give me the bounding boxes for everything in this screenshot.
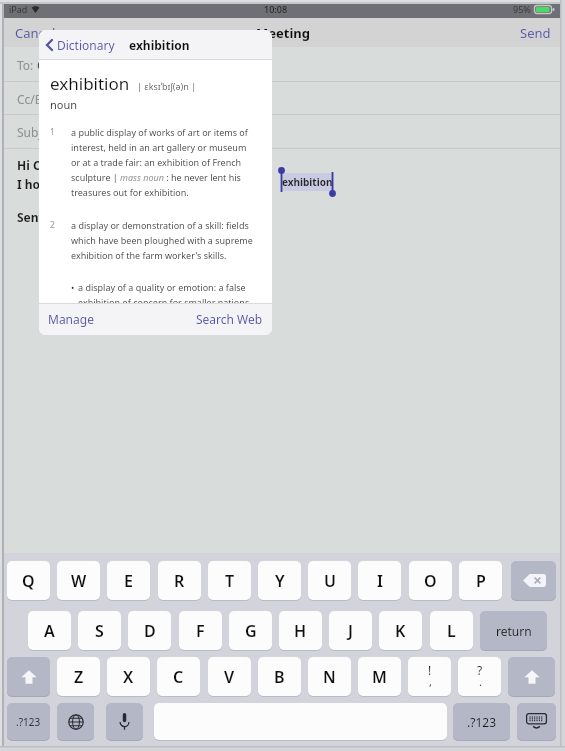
staticText: A	[44, 620, 55, 642]
button[interactable]: .?123	[453, 703, 510, 740]
staticText: Subject:	[17, 124, 65, 140]
staticText: ?	[477, 662, 483, 678]
staticText: Meeting	[65, 124, 112, 140]
button[interactable]: Switch keyboard	[57, 703, 94, 740]
staticText: Search Web	[196, 311, 263, 327]
staticText: Hi Chris,	[17, 157, 67, 173]
staticText: Send	[520, 24, 551, 42]
button[interactable]: ?	[458, 657, 501, 696]
button[interactable]: Shift	[508, 657, 555, 696]
button[interactable]: Cancel	[0, 20, 62, 46]
staticText: Meeting	[256, 24, 310, 42]
staticText: return	[496, 623, 532, 639]
button[interactable]: E	[107, 561, 150, 600]
button[interactable]: Dictation	[106, 703, 143, 740]
button[interactable]: N	[308, 657, 351, 696]
button[interactable]: H	[279, 611, 322, 650]
staticText: K	[395, 620, 406, 642]
staticText: Z	[74, 666, 84, 688]
button[interactable]: .?123	[7, 703, 50, 740]
button[interactable]: B	[258, 657, 301, 696]
button[interactable]: F	[179, 611, 222, 650]
button[interactable]: C	[157, 657, 200, 696]
button[interactable]: W	[57, 561, 100, 600]
staticText: B	[274, 666, 285, 688]
button[interactable]: Shift	[7, 657, 50, 696]
staticText: me@icloud.com	[97, 91, 188, 107]
staticText: Q	[22, 570, 35, 592]
staticText: a public display of works of art or item…	[71, 126, 256, 198]
staticText: U	[324, 570, 336, 592]
button[interactable]: Y	[258, 561, 301, 600]
staticText: Chris Appleseed	[37, 57, 128, 73]
staticText: G	[245, 620, 257, 642]
staticText: Sent from my iPad	[17, 209, 127, 225]
button[interactable]: return	[480, 611, 547, 650]
staticText: F	[196, 620, 205, 642]
staticText: C	[173, 666, 184, 688]
button[interactable]: Q	[7, 561, 50, 600]
staticText: M	[372, 666, 387, 688]
button[interactable]: P	[459, 561, 502, 600]
button[interactable]: J	[329, 611, 372, 650]
staticText: a display or demonstration of a skill: f…	[71, 219, 256, 261]
staticText: exhibition	[282, 175, 333, 189]
button[interactable]: Dictionary	[46, 37, 119, 53]
staticText: I hope you enjoyed the	[17, 176, 154, 192]
staticText: ,	[429, 674, 432, 689]
staticText: 2	[50, 219, 55, 231]
staticText: H	[294, 620, 307, 642]
staticText: J	[348, 620, 353, 642]
button[interactable]: Search Web	[196, 311, 263, 327]
other: Dictation	[119, 713, 130, 730]
button[interactable]: Delete	[511, 561, 556, 600]
other: Switch keyboard	[68, 714, 84, 730]
button[interactable]: Z	[57, 657, 100, 696]
staticText: !	[428, 662, 432, 678]
staticText: O	[424, 570, 437, 592]
button[interactable]: D	[128, 611, 171, 650]
other: Delete	[523, 574, 546, 587]
staticText: Manage	[48, 311, 94, 327]
staticText: iPad	[9, 3, 28, 15]
button[interactable]: G	[229, 611, 272, 650]
staticText: .?123	[467, 714, 497, 730]
button[interactable]: X	[107, 657, 150, 696]
button[interactable]: Manage	[48, 311, 94, 327]
button[interactable]: L	[430, 611, 473, 650]
button[interactable]: M	[358, 657, 401, 696]
staticText: R	[174, 570, 185, 592]
other: Shift	[21, 669, 37, 685]
button[interactable]: !	[408, 657, 451, 696]
staticText: I	[377, 570, 383, 592]
other: Shift	[524, 669, 540, 685]
button[interactable]: S	[78, 611, 121, 650]
staticText: T	[225, 570, 235, 592]
staticText: | ɛksɪˈbɪʃ(ə)n |	[137, 80, 197, 92]
button[interactable]: A	[28, 611, 71, 650]
button[interactable]: V	[208, 657, 251, 696]
button[interactable]: T	[208, 561, 251, 600]
staticText: 95%	[513, 3, 531, 15]
button[interactable]: Send	[520, 24, 551, 42]
button[interactable]: Hide keyboard	[517, 703, 556, 740]
staticText: S	[95, 620, 104, 642]
button[interactable]: R	[158, 561, 201, 600]
staticText: V	[224, 666, 235, 688]
staticText: exhibition	[129, 37, 190, 53]
staticText: 1	[50, 126, 55, 138]
staticText: 10:08	[264, 3, 288, 15]
staticText: Cc/Bcc, From:	[17, 91, 97, 107]
staticText: •	[71, 281, 75, 293]
other: Hide keyboard	[526, 713, 547, 730]
button[interactable]: O	[409, 561, 452, 600]
button[interactable]: U	[308, 561, 351, 600]
staticText: E	[124, 570, 133, 592]
staticText: exhibition	[50, 72, 130, 95]
button[interactable]: K	[379, 611, 422, 650]
staticText: noun	[50, 97, 78, 112]
staticText: Cancel	[15, 24, 56, 42]
staticText: .	[479, 674, 482, 689]
button[interactable]: I	[358, 561, 401, 600]
